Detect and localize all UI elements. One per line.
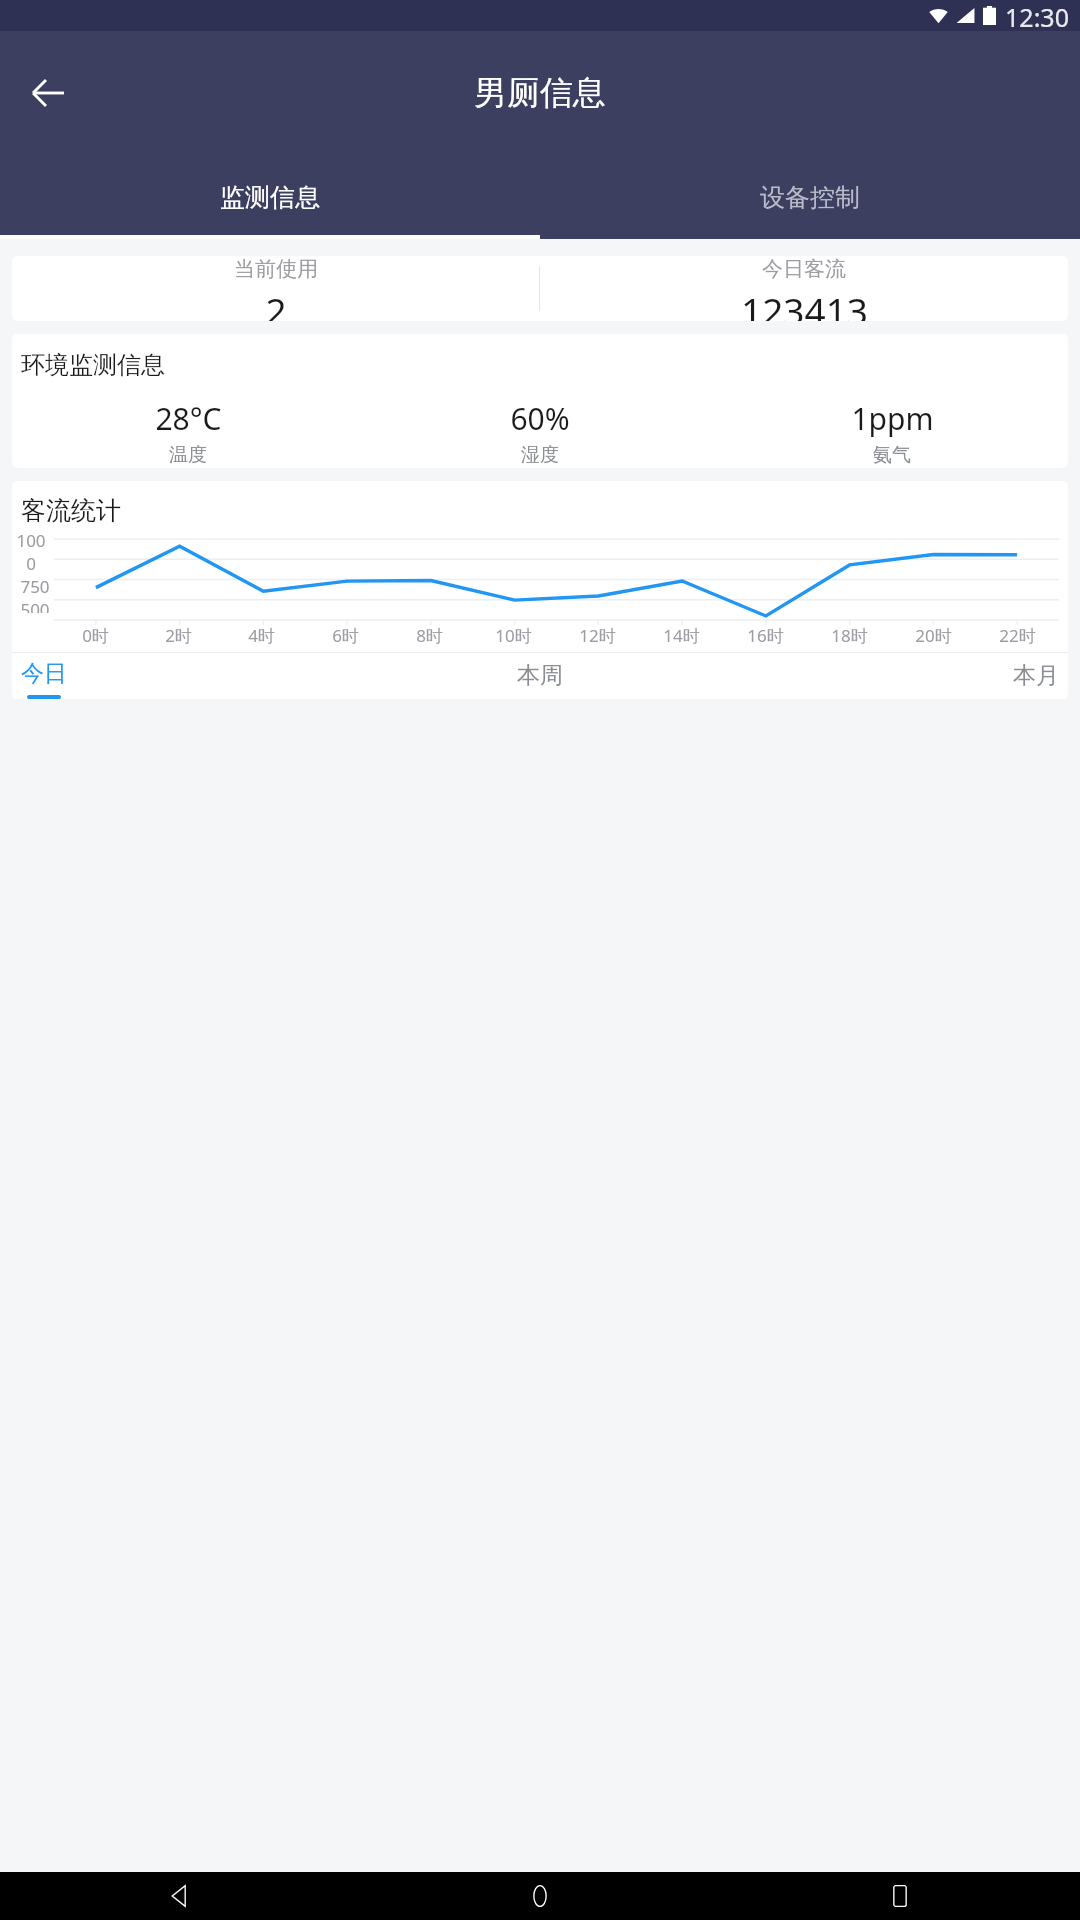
button[interactable]: 今日 bbox=[21, 653, 367, 699]
staticText: 123413 bbox=[741, 285, 868, 321]
staticText: 14时 bbox=[663, 624, 700, 646]
staticText: 12:30 bbox=[1005, 0, 1069, 31]
staticText: 客流统计 bbox=[21, 495, 121, 526]
staticText: 湿度 bbox=[521, 443, 559, 467]
staticText: 1000 bbox=[12, 529, 50, 575]
staticText: 16时 bbox=[747, 624, 784, 646]
staticText: 18时 bbox=[831, 624, 868, 646]
staticText: 环境监测信息 bbox=[21, 350, 165, 380]
button[interactable]: Back bbox=[24, 69, 72, 117]
staticText: 1ppm bbox=[851, 398, 934, 439]
button[interactable]: Recent apps bbox=[720, 1872, 1080, 1920]
button[interactable]: 设备控制 bbox=[540, 155, 1080, 239]
staticText: 本月 bbox=[1013, 661, 1059, 690]
staticText: 氨气 bbox=[873, 443, 911, 467]
staticText: 今日 bbox=[21, 659, 67, 688]
staticText: 2 bbox=[265, 285, 287, 321]
button[interactable]: 当前使用 bbox=[12, 256, 1068, 321]
staticText: 温度 bbox=[169, 443, 207, 467]
button[interactable]: 本月 bbox=[713, 653, 1059, 699]
button[interactable]: Home bbox=[360, 1872, 720, 1920]
staticText: 0时 bbox=[82, 624, 109, 646]
button[interactable]: 环境监测信息 bbox=[12, 334, 1068, 468]
staticText: 4时 bbox=[248, 624, 275, 646]
staticText: 8时 bbox=[416, 624, 443, 646]
staticText: 监测信息 bbox=[220, 182, 320, 213]
staticText: 男厕信息 bbox=[474, 72, 606, 114]
staticText: 20时 bbox=[915, 624, 952, 646]
staticText: 500 bbox=[20, 598, 50, 613]
staticText: 60% bbox=[510, 398, 570, 439]
button[interactable]: 监测信息 bbox=[0, 155, 540, 239]
staticText: 6时 bbox=[332, 624, 359, 646]
staticText: 设备控制 bbox=[760, 182, 860, 213]
staticText: 750 bbox=[20, 575, 50, 598]
staticText: 12时 bbox=[579, 624, 616, 646]
staticText: 22时 bbox=[999, 624, 1036, 646]
button[interactable]: Back bbox=[0, 1872, 360, 1920]
staticText: 当前使用 bbox=[234, 256, 318, 282]
staticText: 28°C bbox=[155, 398, 222, 439]
button[interactable]: 本周 bbox=[367, 653, 713, 699]
staticText: 10时 bbox=[495, 624, 532, 646]
staticText: 2时 bbox=[165, 624, 192, 646]
staticText: 本周 bbox=[517, 661, 563, 690]
staticText: 今日客流 bbox=[762, 256, 846, 282]
